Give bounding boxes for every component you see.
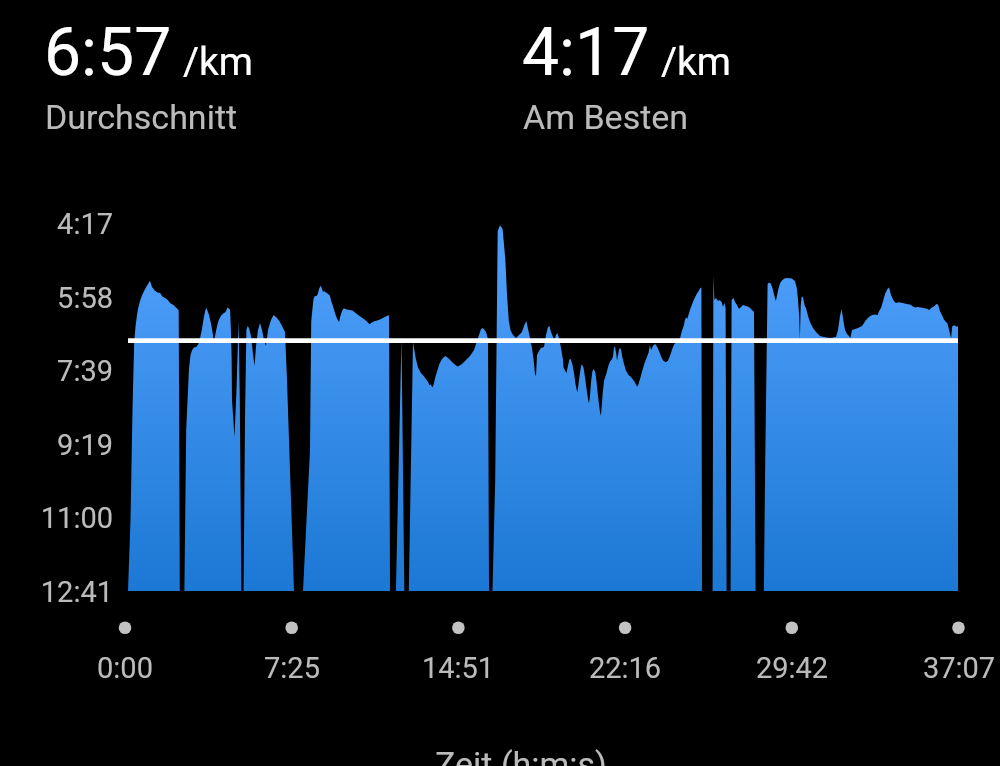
button[interactable]: 4:17 xyxy=(518,8,848,134)
staticText: 7:39 xyxy=(0,354,113,766)
staticText: 7:25 xyxy=(222,651,362,766)
staticText: Durchschnitt xyxy=(45,97,238,137)
staticText: Am Besten xyxy=(523,97,689,137)
staticText: 4:17 xyxy=(0,207,113,766)
staticText: 4:17 xyxy=(522,14,650,91)
button[interactable]: 6:57 xyxy=(40,8,370,134)
staticText: 29:42 xyxy=(722,651,862,766)
staticText: 9:19 xyxy=(0,428,113,766)
staticText: 11:00 xyxy=(0,501,113,766)
staticText: 22:16 xyxy=(555,651,695,766)
staticText: /km xyxy=(661,39,732,85)
staticText: 14:51 xyxy=(388,651,528,766)
staticText: 0:00 xyxy=(55,651,195,766)
staticText: Zeit (h:m:s) xyxy=(421,744,621,766)
staticText: 6:57 xyxy=(44,14,172,91)
staticText: 5:58 xyxy=(0,281,113,766)
staticText: /km xyxy=(183,39,254,85)
button[interactable]: Pace chart xyxy=(128,200,958,600)
staticText: 12:41 xyxy=(0,575,113,766)
staticText: 37:07 xyxy=(889,651,1000,766)
